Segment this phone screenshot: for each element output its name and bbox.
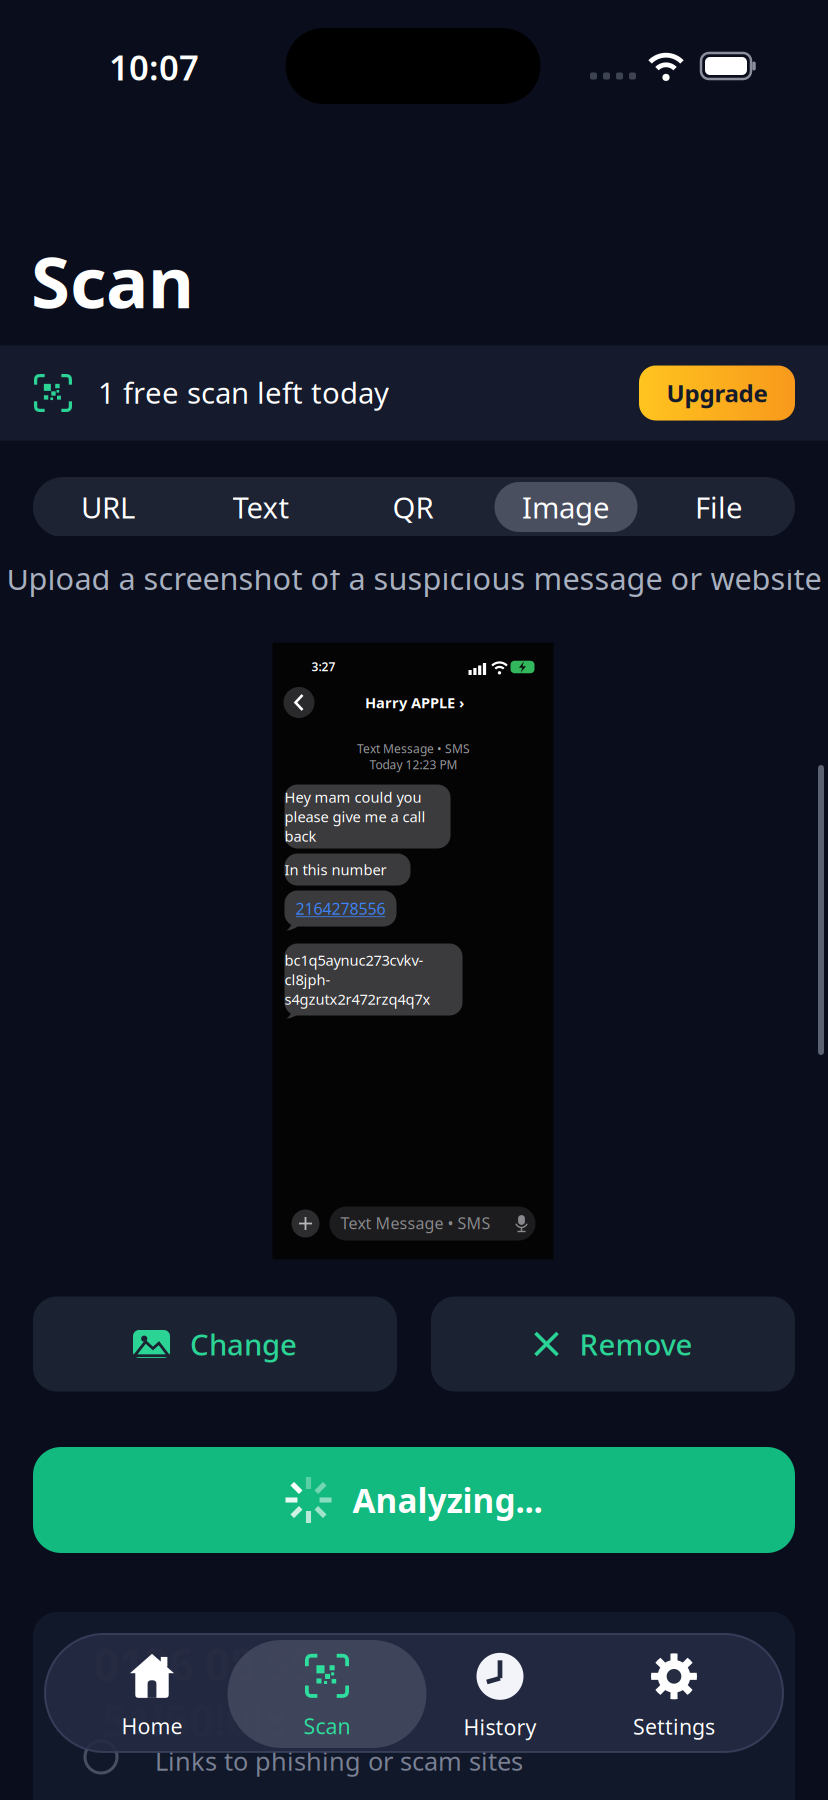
button[interactable]: Home [121,1654,182,1740]
staticText: Analyzing... [352,1478,542,1522]
staticText: Image [522,487,610,526]
button[interactable]: Settings [633,1653,715,1741]
button[interactable]: URL [81,487,135,526]
staticText: Upgrade [666,377,767,409]
staticText: Hey mam could you please give me a call … [284,787,425,846]
button[interactable]: File [695,487,743,526]
staticText: Upload a screenshot of a suspicious mess… [6,558,821,598]
button[interactable]: Analyzing... [33,1447,795,1553]
staticText: 0136 08 55 [94,1635,316,1693]
staticText: File [695,487,743,526]
staticText: Text Message • SMS [340,1212,490,1234]
button[interactable]: History [463,1653,536,1741]
button[interactable]: QR [392,487,433,526]
staticText: 51!50!0!8 [102,1691,288,1749]
staticText: Remove [579,1324,692,1363]
staticText: URL [81,487,135,526]
button[interactable]: Image [522,487,610,526]
staticText: 2164278556 [295,898,385,919]
staticText: Links to phishing or scam sites [155,1744,523,1778]
staticText: Scan [31,234,194,328]
staticText: bc1q5aynuc273cvkv- cl8jph- s4gzutx2r472r… [284,950,430,1009]
staticText: History [463,1713,536,1741]
staticText: In this number [284,860,386,879]
staticText: 1 free scan left today [98,373,389,412]
staticText: 10:07 [109,44,199,90]
staticText: Home [121,1712,182,1740]
button[interactable]: Remove [431,1296,795,1391]
staticText: Today 12:23 PM [369,756,457,772]
staticText: Harry APPLE › [365,693,464,712]
button[interactable]: Change [33,1296,397,1391]
staticText: Text [232,487,289,526]
button[interactable]: Text [232,487,289,526]
staticText: Text Message • SMS [357,740,470,756]
button[interactable]: Scan [303,1654,350,1740]
button[interactable]: Upgrade [639,365,795,420]
staticText: 3:27 [311,658,335,674]
staticText: Change [190,1324,297,1363]
staticText: QR [392,487,433,526]
staticText: Scan [303,1712,350,1740]
staticText: Settings [633,1712,715,1741]
